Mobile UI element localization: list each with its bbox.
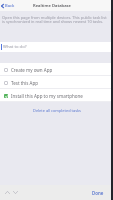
button[interactable]: What to do? (0, 42, 113, 52)
button[interactable]: Install this App to my smartphone (0, 89, 113, 102)
staticText: Install this App to my smartphone (11, 93, 83, 99)
staticText: Delete all completed tasks (33, 108, 81, 113)
button[interactable]: Next field (12, 188, 19, 197)
staticText: Create my own App (11, 67, 53, 73)
staticText: Open this page from multiple devices. Th… (2, 15, 107, 25)
button[interactable]: Create my own App (0, 63, 113, 76)
button[interactable]: Back (0, 3, 17, 9)
staticText: What to do? (3, 44, 27, 50)
staticText: Realtime Database (33, 3, 72, 9)
staticText: Test this App (11, 80, 38, 86)
staticText: Done (92, 190, 104, 196)
button[interactable]: Test this App (0, 76, 113, 89)
staticText: Back (5, 3, 15, 9)
button[interactable]: Delete all completed tasks (0, 102, 113, 118)
button[interactable]: Previous field (4, 188, 11, 197)
button[interactable]: Done (84, 188, 113, 198)
